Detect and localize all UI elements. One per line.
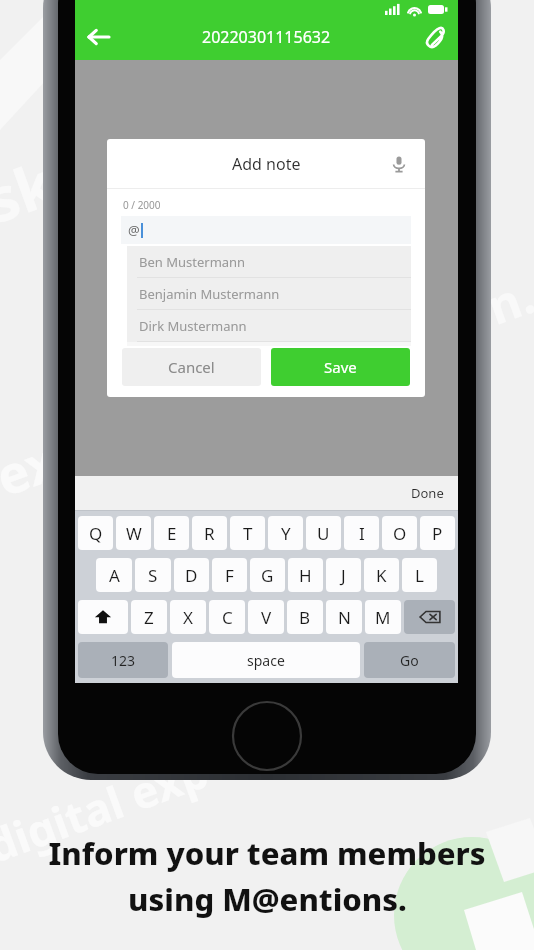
staticText: L: [415, 564, 424, 587]
staticText: F: [225, 564, 234, 587]
button[interactable]: S: [135, 558, 171, 592]
staticText: ex: [0, 424, 67, 511]
button[interactable]: X: [170, 600, 206, 634]
staticText: sk: [0, 141, 66, 241]
button[interactable]: B: [287, 600, 323, 634]
button[interactable]: space: [172, 642, 360, 678]
staticText: E: [167, 522, 177, 545]
button[interactable]: P: [420, 516, 455, 550]
button[interactable]: Shift: [78, 600, 128, 634]
staticText: @: [128, 221, 140, 239]
staticText: D: [185, 564, 198, 587]
button[interactable]: W: [116, 516, 151, 550]
button[interactable]: Z: [131, 600, 167, 634]
staticText: Inform your team members: [48, 832, 486, 874]
button[interactable]: N: [326, 600, 362, 634]
button[interactable]: Ben Mustermann: [127, 246, 411, 277]
staticText: Add note: [232, 153, 301, 175]
button[interactable]: Backspace: [404, 600, 455, 634]
staticText: N: [338, 606, 351, 629]
staticText: space: [247, 651, 285, 670]
button[interactable]: C: [209, 600, 245, 634]
staticText: Save: [324, 357, 357, 377]
staticText: O: [393, 522, 407, 545]
button[interactable]: Go: [364, 642, 455, 678]
button[interactable]: Attach: [412, 14, 458, 60]
staticText: U: [317, 522, 330, 545]
staticText: X: [183, 606, 193, 629]
staticText: T: [243, 522, 253, 545]
button[interactable]: T: [230, 516, 265, 550]
staticText: Q: [89, 522, 103, 545]
staticText: Ben Mustermann: [139, 253, 246, 271]
button[interactable]: F: [212, 558, 247, 592]
staticText: G: [261, 564, 274, 587]
button[interactable]: Back: [75, 14, 121, 60]
staticText: digital exp: [0, 740, 216, 876]
staticText: P: [432, 522, 443, 545]
button[interactable]: H: [288, 558, 323, 592]
staticText: K: [376, 564, 387, 587]
button[interactable]: Cancel: [122, 348, 261, 386]
button[interactable]: R: [192, 516, 227, 550]
staticText: H: [299, 564, 312, 587]
staticText: Cancel: [168, 357, 215, 377]
staticText: B: [299, 606, 311, 629]
button[interactable]: L: [402, 558, 437, 592]
staticText: Dirk Mustermann: [139, 317, 247, 335]
button[interactable]: Done: [403, 480, 452, 506]
staticText: Z: [144, 606, 154, 629]
button[interactable]: E: [154, 516, 189, 550]
staticText: n.: [478, 262, 534, 339]
button[interactable]: K: [364, 558, 399, 592]
button[interactable]: Save: [271, 348, 410, 386]
staticText: Done: [411, 484, 444, 502]
button[interactable]: M: [365, 600, 401, 634]
staticText: R: [204, 522, 215, 545]
button[interactable]: 123: [78, 642, 168, 678]
staticText: I: [359, 522, 365, 545]
staticText: 20220301115632: [202, 26, 331, 48]
staticText: Y: [281, 522, 291, 545]
button[interactable]: Q: [78, 516, 113, 550]
button[interactable]: D: [174, 558, 209, 592]
button[interactable]: O: [382, 516, 417, 550]
button[interactable]: Voice input: [379, 144, 419, 184]
staticText: Go: [400, 651, 419, 670]
staticText: 123: [111, 651, 136, 670]
button[interactable]: G: [250, 558, 285, 592]
button[interactable]: I: [344, 516, 379, 550]
button[interactable]: Dirk Mustermann: [127, 310, 411, 341]
staticText: using M@entions.: [128, 878, 407, 920]
staticText: W: [126, 522, 142, 545]
staticText: J: [341, 564, 346, 587]
staticText: Benjamin Mustermann: [139, 285, 280, 303]
staticText: S: [148, 564, 158, 587]
staticText: C: [222, 606, 233, 629]
staticText: A: [109, 564, 120, 587]
staticText: 0 / 2000: [123, 198, 161, 212]
button[interactable]: Benjamin Mustermann: [127, 278, 411, 309]
button[interactable]: @: [121, 216, 411, 244]
button[interactable]: Y: [268, 516, 303, 550]
button[interactable]: A: [96, 558, 132, 592]
button[interactable]: U: [306, 516, 341, 550]
staticText: M: [375, 606, 391, 629]
button[interactable]: V: [248, 600, 284, 634]
staticText: V: [261, 606, 272, 629]
button[interactable]: J: [326, 558, 361, 592]
